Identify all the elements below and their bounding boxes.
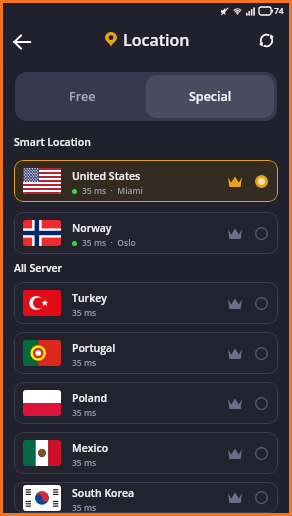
button[interactable]: Poland [14, 382, 278, 424]
staticText: 35 ms [72, 307, 97, 319]
staticText: Poland [72, 391, 108, 405]
button[interactable]: United States [14, 160, 278, 202]
staticText: Free [69, 88, 96, 105]
staticText: South Korea [72, 486, 135, 500]
button[interactable]: Mexico [14, 432, 278, 474]
button[interactable]: Special [146, 75, 274, 118]
staticText: 35 ms [72, 407, 97, 419]
button[interactable]: Free [18, 75, 146, 118]
staticText: 35 ms [72, 457, 97, 469]
button[interactable]: Norway [14, 212, 278, 254]
button[interactable]: South Korea [14, 482, 278, 513]
staticText: Location [123, 29, 190, 51]
staticText: All Server [14, 261, 63, 275]
staticText: 35 ms · Miami [82, 185, 143, 197]
staticText: Smart Location [14, 135, 91, 149]
staticText: 35 ms [72, 357, 97, 369]
staticText: Special [189, 88, 232, 105]
button[interactable]: Turkey [14, 282, 278, 324]
staticText: 35 ms [72, 502, 97, 513]
staticText: Mexico [72, 441, 109, 455]
button[interactable]: Refresh [250, 24, 282, 56]
staticText: United States [72, 169, 141, 183]
button[interactable]: Back [6, 24, 38, 56]
staticText: Turkey [72, 291, 107, 305]
button[interactable]: Portugal [14, 332, 278, 374]
staticText: Norway [72, 221, 112, 235]
staticText: Portugal [72, 341, 116, 355]
staticText: 74 [274, 5, 284, 17]
staticText: 35 ms · Oslo [82, 237, 136, 249]
